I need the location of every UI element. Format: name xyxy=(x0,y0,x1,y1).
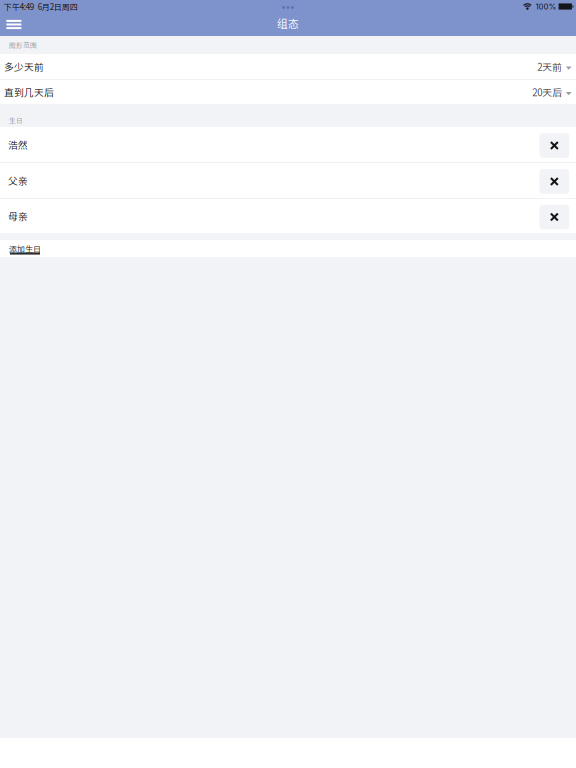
staticText: 组态 xyxy=(277,15,299,31)
staticText: 母亲 xyxy=(8,209,28,223)
staticText: 添加生日 xyxy=(9,243,41,255)
button[interactable]: 添加生日 xyxy=(0,240,576,257)
button[interactable]: Remove 父亲 xyxy=(539,167,576,194)
staticText: 多少天前 xyxy=(4,59,44,74)
staticText: 图形范围 xyxy=(9,40,37,50)
staticText: 2天前 xyxy=(537,59,562,74)
button[interactable]: 直到几天后 xyxy=(0,80,576,104)
button[interactable]: Show sidebar xyxy=(0,13,31,35)
button[interactable]: 父亲 xyxy=(0,163,539,198)
button[interactable]: Remove 母亲 xyxy=(539,203,576,229)
button[interactable]: Remove 浩然 xyxy=(539,131,576,158)
button[interactable]: 多少天前 xyxy=(0,54,576,79)
staticText: 浩然 xyxy=(8,137,28,152)
staticText: 100% xyxy=(536,2,557,11)
button[interactable]: 母亲 xyxy=(0,199,539,233)
staticText: 直到几天后 xyxy=(4,85,54,99)
button[interactable]: 浩然 xyxy=(0,127,539,162)
staticText: 20天后 xyxy=(532,85,562,99)
staticText: 生日 xyxy=(9,115,23,125)
staticText: 下午4:49 6月2日周四 xyxy=(4,1,78,12)
staticText: 父亲 xyxy=(8,173,28,188)
